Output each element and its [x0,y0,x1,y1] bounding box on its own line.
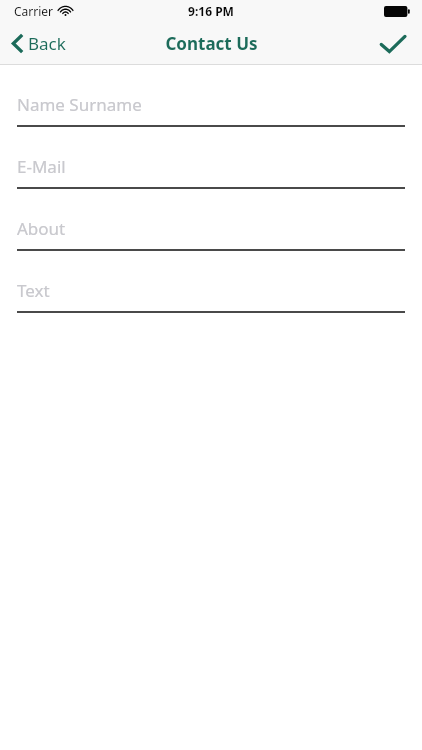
staticText: Name Surname [17,93,142,116]
button[interactable]: Back [0,22,78,65]
button[interactable]: Name Surname [0,83,422,145]
staticText: 9:16 PM [188,3,234,19]
button[interactable]: E-Mail [0,145,422,207]
staticText: Text [17,279,50,302]
staticText: Carrier [14,3,54,19]
staticText: Contact Us [165,32,258,55]
button[interactable]: About [0,207,422,269]
staticText: Back [28,32,66,55]
staticText: E-Mail [17,155,66,178]
button[interactable]: Send [364,22,422,65]
staticText: About [17,217,66,240]
button[interactable]: Text [0,269,422,331]
